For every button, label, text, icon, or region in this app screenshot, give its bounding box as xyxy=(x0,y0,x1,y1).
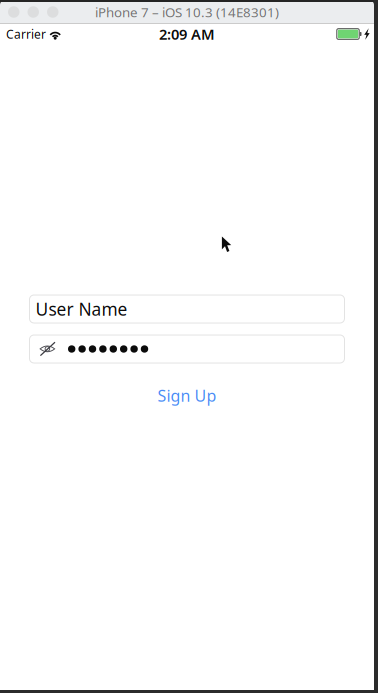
staticText: 2:09 AM xyxy=(159,24,215,44)
button[interactable] xyxy=(29,335,344,363)
staticText: User Name xyxy=(35,297,127,320)
button[interactable]: Zoom window xyxy=(47,6,58,18)
button[interactable]: Sign Up xyxy=(157,385,216,406)
staticText: iPhone 7 – iOS 10.3 (14E8301) xyxy=(95,3,279,21)
button[interactable]: User Name xyxy=(29,295,344,323)
staticText: Sign Up xyxy=(157,385,216,406)
button[interactable]: Close window xyxy=(8,6,19,18)
staticText: Carrier xyxy=(6,26,46,42)
button[interactable]: Minimise window xyxy=(27,6,39,18)
